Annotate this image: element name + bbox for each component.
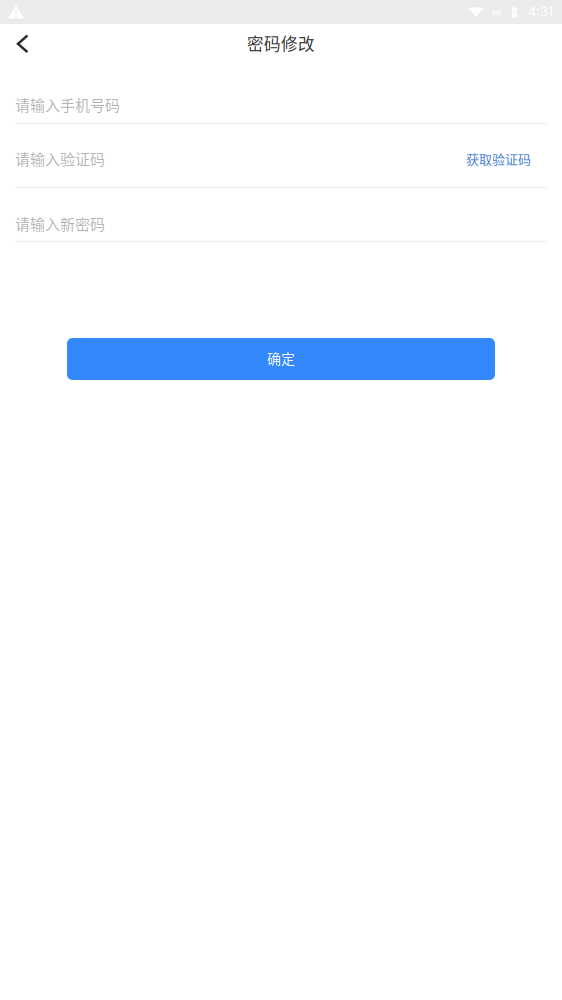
button[interactable]: 请输入验证码 [15, 124, 466, 187]
staticText: 请输入验证码 [15, 148, 105, 169]
staticText: 请输入手机号码 [15, 94, 120, 115]
staticText: 获取验证码 [466, 149, 531, 168]
button[interactable]: 请输入新密码 [15, 188, 547, 241]
button[interactable]: 确定 [67, 338, 495, 380]
button[interactable]: 请输入手机号码 [15, 68, 547, 123]
button[interactable]: 获取验证码 [466, 124, 547, 187]
button[interactable]: Back [2, 24, 46, 68]
staticText: 请输入新密码 [15, 213, 105, 234]
staticText: 确定 [267, 348, 295, 368]
staticText: 密码修改 [247, 31, 315, 55]
staticText: 4:31 [528, 4, 553, 20]
